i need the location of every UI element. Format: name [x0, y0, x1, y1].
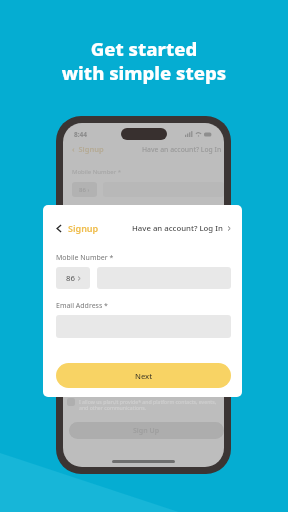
staticText: Get started with simple steps [0, 36, 288, 85]
button[interactable]: Have an account? Log In [132, 221, 231, 235]
staticText: Have an account? Log In › [142, 145, 224, 154]
staticText: I allow us plan,it provide* and platform… [79, 398, 217, 412]
button[interactable]: Signup [56, 221, 99, 235]
staticText: Email Address * [56, 301, 108, 311]
staticText: Have an account? Log In [132, 223, 223, 234]
staticText: Next [135, 371, 153, 381]
staticText: Signup [68, 222, 99, 234]
staticText: Mobile Number * [72, 168, 122, 176]
staticText: Sign Up [133, 426, 160, 436]
staticText: 86 › [79, 186, 90, 194]
staticText: Mobile Number * [56, 253, 114, 263]
staticText: 8:44 [74, 130, 87, 139]
button[interactable]: 86 [56, 267, 90, 289]
staticText: 86 [66, 273, 75, 284]
staticText: ‹ Signup [72, 144, 104, 154]
button[interactable]: Next [56, 363, 231, 388]
